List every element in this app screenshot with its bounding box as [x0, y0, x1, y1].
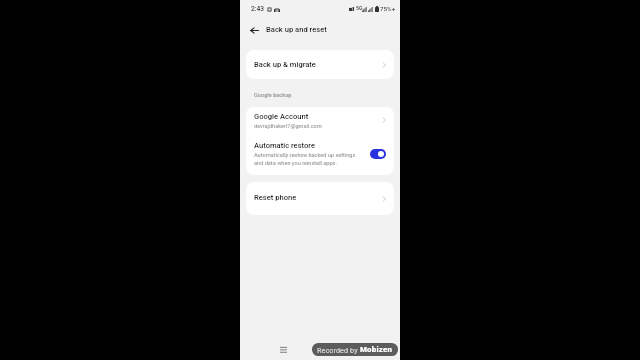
button[interactable]: Back up & migrate	[246, 50, 394, 79]
staticText: 2:43	[251, 5, 264, 13]
button[interactable]: Reset phone	[246, 182, 394, 215]
button[interactable]: Recents	[280, 345, 287, 354]
staticText: Automatically restore backed up settings…	[254, 152, 356, 166]
staticText: Back up & migrate	[254, 60, 316, 69]
staticText: Google Account	[254, 112, 309, 121]
button[interactable]: Back	[246, 22, 262, 38]
staticText: Google backup	[254, 92, 292, 99]
staticText: devrajdhakeri7@gmail.com	[254, 123, 322, 130]
staticText: 75%	[380, 5, 392, 12]
staticText: Back up and reset	[266, 25, 327, 34]
staticText: Recorded by	[317, 346, 360, 354]
button[interactable]: Automatic restore toggle	[370, 149, 386, 159]
staticText: Automatic restore	[254, 141, 316, 150]
button[interactable]: Automatic restore	[246, 136, 394, 175]
button[interactable]: Google Account	[246, 107, 394, 136]
staticText: Mobizen	[360, 345, 393, 354]
staticText: Reset phone	[254, 193, 297, 202]
staticText: 5G	[356, 5, 363, 11]
